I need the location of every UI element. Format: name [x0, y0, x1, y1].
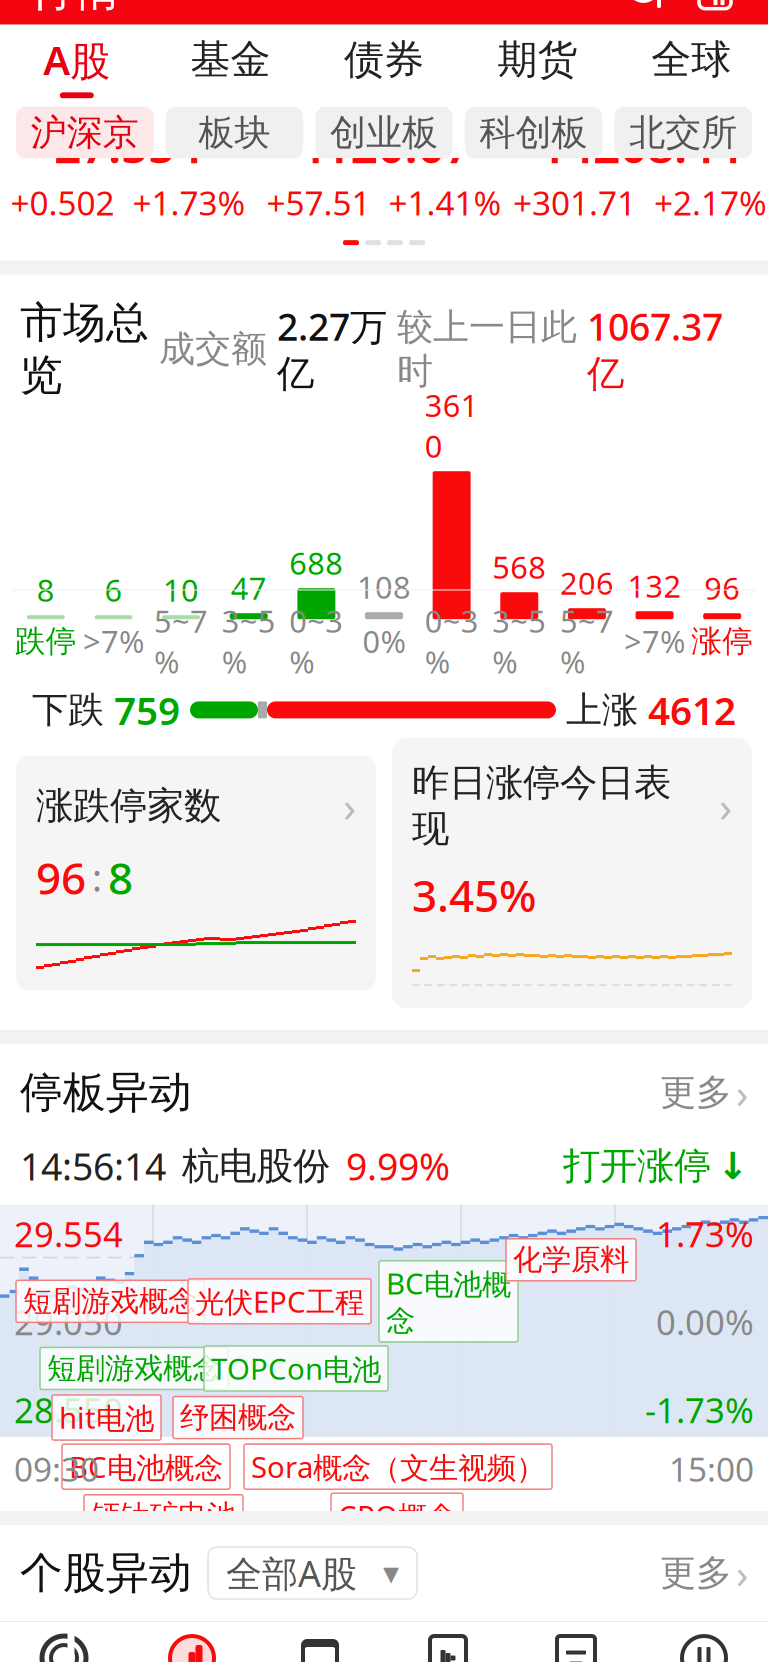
staticText: 打开涨停 — [563, 1143, 711, 1189]
button[interactable]: 首页 — [0, 1622, 128, 1662]
button[interactable]: 债券 — [307, 21, 461, 102]
staticText: 27.554 — [54, 113, 202, 176]
staticText: BC电池概念 — [386, 1264, 511, 1339]
staticText: >7% — [83, 621, 144, 661]
staticText: 化学原料 — [513, 1242, 629, 1278]
staticText: 29.050 — [14, 1299, 123, 1345]
staticText: A股 — [43, 33, 110, 86]
staticText: 28.550 — [14, 1387, 123, 1433]
button[interactable]: 课堂 — [384, 1622, 512, 1662]
staticText: 10 — [163, 569, 199, 610]
staticText: 0~3% — [425, 600, 479, 682]
button[interactable]: 昨日涨停今日表现 — [392, 738, 752, 1008]
staticText: 期货 — [498, 35, 578, 84]
staticText: 6 — [104, 569, 122, 610]
staticText: 206 — [560, 562, 614, 603]
button[interactable]: 涨跌停家数 — [16, 755, 376, 991]
staticText: 0% — [362, 621, 405, 661]
staticText: 09:30 — [14, 1447, 99, 1491]
button[interactable]: 搜索 — [624, 0, 670, 13]
button[interactable]: 全球 — [614, 21, 768, 102]
staticText: 3.45% — [412, 866, 536, 924]
staticText: › — [343, 777, 356, 834]
staticText: ↓ — [717, 1145, 748, 1187]
button[interactable]: 全部A股 — [208, 1547, 417, 1599]
staticText: 132 — [627, 565, 681, 606]
staticText: › — [719, 777, 732, 834]
button[interactable]: A股 — [0, 19, 154, 104]
staticText: 个股异动 — [20, 1547, 192, 1599]
staticText: 全球 — [651, 35, 731, 84]
staticText: 14:56:14 — [20, 1141, 166, 1191]
staticText: >7% — [624, 621, 685, 661]
staticText: 债券 — [344, 35, 424, 84]
staticText: 759 — [114, 684, 180, 736]
staticText: 2.27万亿 — [277, 301, 387, 397]
staticText: 昨日涨停今日表现 — [412, 760, 671, 852]
staticText: 3610 — [425, 385, 479, 466]
staticText: 568 — [492, 546, 546, 587]
button[interactable]: 更多 — [660, 1066, 748, 1119]
staticText: 4120.07 — [296, 113, 471, 176]
staticText: 成交额 — [159, 327, 267, 371]
staticText: 14208.44 — [539, 113, 741, 176]
staticText: 创业板 — [330, 111, 438, 155]
staticText: 0.00% — [656, 1299, 754, 1345]
staticText: +301.71 — [513, 180, 636, 225]
staticText: 3~5% — [222, 600, 276, 682]
staticText: +1.41% — [388, 180, 501, 225]
button[interactable]: 创业板 — [315, 107, 453, 159]
button[interactable]: 期货 — [461, 21, 614, 102]
staticText: 5~7% — [560, 600, 614, 682]
staticText: › — [736, 1066, 748, 1119]
staticText: 较上一日此时 — [397, 305, 577, 393]
staticText: BC电池概念 — [69, 1447, 223, 1486]
button[interactable]: 交易 — [640, 1622, 768, 1662]
staticText: 9.99% — [346, 1141, 450, 1191]
staticText: 沪深京 — [31, 111, 139, 155]
staticText: 8 — [37, 569, 55, 610]
staticText: 光伏EPC工程 — [195, 1282, 364, 1321]
staticText: : — [92, 852, 102, 902]
staticText: 板块 — [198, 111, 270, 155]
staticText: 0~3% — [289, 600, 343, 682]
staticText: ▾ — [383, 1555, 399, 1591]
staticText: 停板异动 — [20, 1066, 192, 1119]
button[interactable]: 行情 — [128, 1622, 256, 1662]
staticText: CPO概念 — [338, 1496, 456, 1535]
staticText: 更多 — [660, 1070, 732, 1115]
staticText: 钙钛矿电池 — [91, 1498, 236, 1534]
staticText: hit电池 — [59, 1398, 154, 1437]
staticText: 15:00 — [669, 1447, 754, 1491]
button[interactable]: 自选 — [256, 1622, 384, 1662]
staticText: 3~5% — [492, 600, 546, 682]
staticText: 科创板 — [480, 111, 588, 155]
staticText: 96 — [704, 567, 740, 608]
staticText: 纾困概念 — [180, 1399, 296, 1435]
staticText: 短剧游戏概念 — [47, 1350, 221, 1386]
staticText: 8 — [108, 848, 133, 906]
staticText: 47 — [231, 567, 267, 608]
staticText: Sora概念（文生视频） — [251, 1447, 545, 1486]
staticText: 下跌 — [32, 688, 104, 732]
button[interactable]: 自选管理 — [692, 0, 738, 13]
staticText: 96 — [36, 848, 86, 906]
staticText: 行情 — [30, 0, 120, 17]
button[interactable]: 板块 — [166, 107, 303, 159]
button[interactable]: 资讯 — [512, 1622, 640, 1662]
button[interactable]: 北交所 — [614, 107, 752, 159]
staticText: › — [736, 1546, 748, 1600]
staticText: CPO概念 — [386, 1545, 504, 1584]
staticText: 跌停 — [15, 622, 77, 660]
staticText: 北交所 — [629, 111, 737, 155]
staticText: 涨停 — [691, 622, 753, 660]
staticText: 基金 — [190, 35, 270, 84]
button[interactable]: 基金 — [154, 21, 307, 102]
button[interactable]: 更多 — [660, 1546, 748, 1600]
button[interactable]: 科创板 — [465, 107, 602, 159]
staticText: TOPCon电池 — [211, 1349, 381, 1388]
staticText: 全部A股 — [226, 1549, 357, 1597]
staticText: AI语料概念 — [107, 1545, 252, 1584]
button[interactable]: 沪深京 — [16, 107, 154, 159]
staticText: 5~7% — [154, 600, 208, 682]
